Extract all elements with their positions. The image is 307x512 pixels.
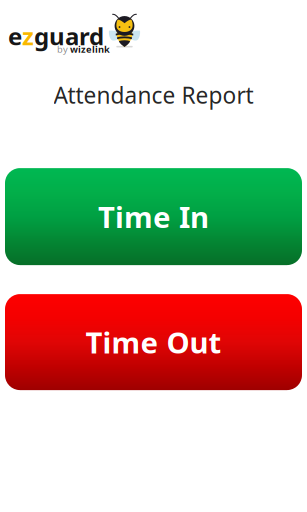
staticText: e bbox=[8, 20, 22, 52]
staticText: z bbox=[22, 20, 34, 52]
staticText: guard bbox=[34, 20, 104, 52]
staticText: by bbox=[57, 43, 68, 55]
staticText: Time Out bbox=[85, 323, 221, 362]
button[interactable]: Time In bbox=[5, 168, 302, 265]
button[interactable]: Time Out bbox=[5, 294, 302, 390]
staticText: Time In bbox=[98, 197, 209, 236]
staticText: wizelink bbox=[70, 43, 110, 55]
staticText: Attendance Report bbox=[53, 80, 253, 110]
